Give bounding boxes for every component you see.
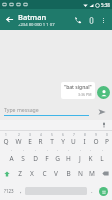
button[interactable]: Back (3, 13, 16, 26)
staticText: ' (23, 150, 24, 154)
staticText: 3 (29, 133, 31, 137)
button[interactable]: . (87, 182, 96, 200)
staticText: ' (102, 150, 103, 154)
button[interactable]: ' (96, 148, 107, 165)
staticText: P (105, 137, 109, 146)
staticText: ' (68, 150, 69, 154)
button[interactable]: 4 (35, 131, 46, 148)
button[interactable]: M (86, 165, 98, 182)
staticText: H (66, 154, 71, 163)
staticText: B (66, 169, 71, 178)
button[interactable]: ' (5, 148, 17, 165)
button[interactable]: 3 (24, 131, 35, 148)
button[interactable]: ?123 (2, 182, 16, 200)
button[interactable]: Attach (85, 14, 97, 26)
staticText: 5:38 (101, 2, 110, 8)
staticText: M (89, 169, 95, 178)
button[interactable]: ' (52, 148, 63, 165)
button[interactable]: Batman (18, 12, 71, 28)
staticText: 8 (84, 133, 86, 137)
button[interactable]: Z (14, 165, 26, 182)
button[interactable]: Send (95, 105, 108, 118)
staticText: ' (35, 150, 36, 154)
button[interactable]: ' (85, 148, 96, 165)
button[interactable]: 1 (0, 131, 12, 148)
staticText: E (28, 137, 32, 146)
staticText: . (91, 187, 93, 195)
button[interactable]: ' (63, 148, 74, 165)
staticText: R (38, 137, 43, 146)
staticText: I (83, 137, 86, 146)
button[interactable]: Type message (4, 106, 89, 116)
button[interactable]: ' (74, 148, 85, 165)
staticText: ' (57, 150, 58, 154)
staticText: "bat signal" (64, 84, 92, 91)
button[interactable]: Shift (0, 165, 14, 182)
button[interactable]: 8 (79, 131, 90, 148)
staticText: 1 (5, 133, 7, 137)
staticText: T (50, 137, 54, 146)
staticText: 3:36 PM (78, 92, 92, 97)
staticText: , (20, 187, 22, 195)
button[interactable]: ' (41, 148, 52, 165)
staticText: F (45, 154, 49, 163)
button[interactable]: 2 (12, 131, 24, 148)
button[interactable]: X (26, 165, 38, 182)
staticText: J (79, 154, 81, 163)
button[interactable]: Voice input (98, 120, 110, 130)
staticText: X (30, 169, 34, 178)
button[interactable]: 6 (57, 131, 68, 148)
staticText: Z (18, 169, 22, 178)
button[interactable]: N (74, 165, 86, 182)
staticText: V (54, 169, 58, 178)
staticText: 0 (106, 133, 108, 137)
staticText: ' (90, 150, 91, 154)
staticText: 6 (62, 133, 64, 137)
button[interactable]: ' (29, 148, 41, 165)
staticText: C (42, 169, 47, 178)
staticText: Type message (4, 106, 39, 113)
staticText: O (93, 137, 99, 146)
staticText: Batman (18, 12, 47, 22)
button[interactable]: More options (97, 14, 109, 26)
staticText: 9 (95, 133, 97, 137)
staticText: ' (11, 150, 12, 154)
staticText: G (55, 154, 60, 163)
staticText: 7 (73, 133, 75, 137)
button[interactable]: B (62, 165, 74, 182)
staticText: N (78, 169, 83, 178)
button[interactable]: Contact avatar (97, 86, 110, 99)
staticText: W (15, 137, 22, 146)
staticText: 4 (40, 133, 42, 137)
staticText: ?123 (4, 188, 14, 194)
button[interactable]: Backspace (98, 165, 112, 182)
staticText: Q (3, 137, 9, 146)
staticText: +234 80 000 1 1 07 (18, 22, 55, 28)
button[interactable]: 7 (68, 131, 79, 148)
button[interactable]: , (16, 182, 25, 200)
staticText: 2 (18, 133, 20, 137)
button[interactable]: 5 (46, 131, 57, 148)
staticText: U (71, 137, 76, 146)
button[interactable]: 9 (90, 131, 101, 148)
button[interactable]: Emoji (96, 182, 110, 200)
staticText: ' (80, 150, 81, 154)
staticText: Y (61, 137, 65, 146)
staticText: S (21, 154, 25, 163)
staticText: K (88, 154, 93, 163)
staticText: A (9, 154, 14, 163)
button[interactable]: C (38, 165, 50, 182)
button[interactable]: 0 (101, 131, 112, 148)
button[interactable]: ' (17, 148, 29, 165)
button[interactable]: Call (71, 13, 85, 27)
staticText: L (100, 154, 104, 163)
button[interactable]: "bat signal" (61, 82, 95, 99)
button[interactable]: V (50, 165, 62, 182)
staticText: ' (47, 150, 48, 154)
staticText: 5 (51, 133, 53, 137)
staticText: D (33, 154, 38, 163)
